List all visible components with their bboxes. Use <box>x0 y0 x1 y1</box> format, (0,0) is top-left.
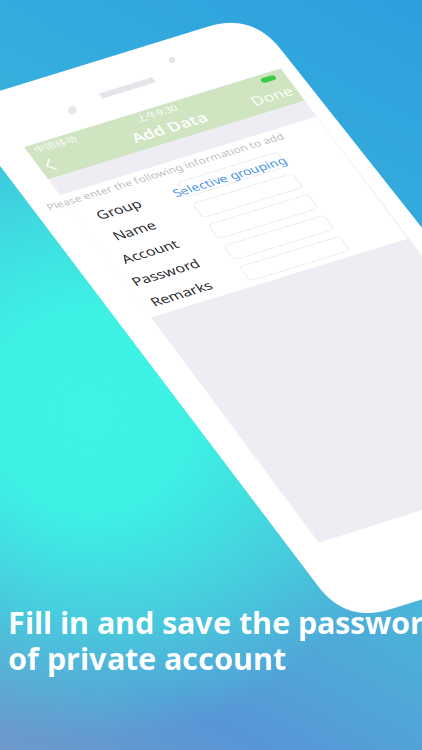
button[interactable]: Selective grouping <box>136 138 299 162</box>
staticText: Group <box>25 134 88 162</box>
staticText: Please enter the following information t… <box>0 99 318 121</box>
staticText: Password <box>9 260 105 288</box>
staticText: of private account <box>8 638 286 678</box>
staticText: Fill in and save the password <box>8 602 422 642</box>
staticText: Name <box>27 176 87 204</box>
staticText: Selective grouping <box>136 138 299 162</box>
staticText: Account <box>16 218 97 246</box>
staticText: Add Data <box>136 24 244 56</box>
